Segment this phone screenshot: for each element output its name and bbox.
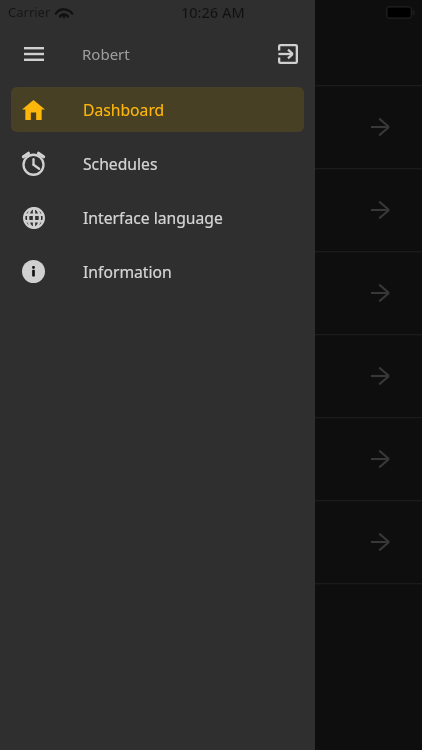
other: Open item (371, 367, 389, 385)
other: Open item (371, 450, 389, 468)
button[interactable]: Log out (266, 32, 310, 76)
button[interactable]: Open item (0, 334, 422, 417)
button[interactable]: Open item (0, 500, 422, 583)
staticText: Robert (82, 44, 130, 64)
button[interactable]: Open navigation menu (10, 30, 58, 78)
button[interactable]: Open item (0, 168, 422, 251)
other: Open item (371, 201, 389, 219)
other: Open item (371, 533, 389, 551)
staticText: Carrier (8, 3, 51, 21)
staticText: Information (83, 261, 172, 282)
other: Open item (371, 284, 389, 302)
staticText: 10:26 AM (181, 2, 245, 22)
staticText: Dashboard (83, 99, 165, 120)
button[interactable]: Dashboard (11, 87, 304, 132)
button[interactable]: Schedules (11, 141, 304, 186)
button[interactable]: Open item (0, 251, 422, 334)
other: Open item (371, 118, 389, 136)
staticText: Schedules (83, 153, 158, 174)
staticText: Interface language (83, 207, 223, 228)
button[interactable]: Open item (0, 85, 422, 168)
button[interactable]: Information (11, 249, 304, 294)
button[interactable]: Interface language (11, 195, 304, 240)
button[interactable]: Open item (0, 417, 422, 500)
